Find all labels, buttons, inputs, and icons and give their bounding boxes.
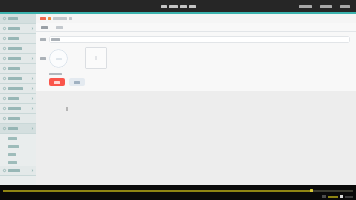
button[interactable]: Sub navigation item [0, 134, 36, 142]
button[interactable]: Navigation item [0, 24, 36, 33]
button[interactable]: Tab [55, 25, 64, 30]
button[interactable]: Navigation item [0, 94, 36, 103]
button[interactable]: Upload avatar [49, 49, 68, 68]
button[interactable]: Upload image [85, 47, 107, 69]
button[interactable]: Header menu [298, 3, 313, 10]
button[interactable]: Sub navigation item [0, 150, 36, 158]
button[interactable]: Navigation item [0, 114, 36, 123]
button[interactable]: Cancel [69, 78, 85, 86]
button[interactable]: Navigation item [0, 104, 36, 113]
button[interactable]: Navigation item [0, 166, 36, 175]
button[interactable]: Header menu [339, 3, 351, 10]
button[interactable]: Seek bar [3, 190, 353, 192]
button[interactable]: Home breadcrumb [40, 17, 46, 20]
button[interactable]: Navigation item [0, 54, 36, 63]
button[interactable]: Navigation item [0, 84, 36, 93]
button[interactable]: Site title [159, 3, 198, 10]
button[interactable]: Navigation item [0, 34, 36, 43]
button[interactable]: Navigation item [0, 74, 36, 83]
button[interactable]: Sub navigation item [0, 142, 36, 150]
button[interactable]: Navigation item [0, 124, 36, 133]
button[interactable]: Navigation item [0, 44, 36, 53]
button[interactable]: Name input field [49, 36, 350, 43]
button[interactable]: Navigation item [0, 14, 36, 23]
button[interactable]: Tab [40, 25, 49, 30]
button[interactable]: Sub navigation item [0, 158, 36, 166]
button[interactable]: Delete [49, 78, 65, 86]
button[interactable]: Navigation item [0, 64, 36, 73]
button[interactable]: Header menu [319, 3, 333, 10]
